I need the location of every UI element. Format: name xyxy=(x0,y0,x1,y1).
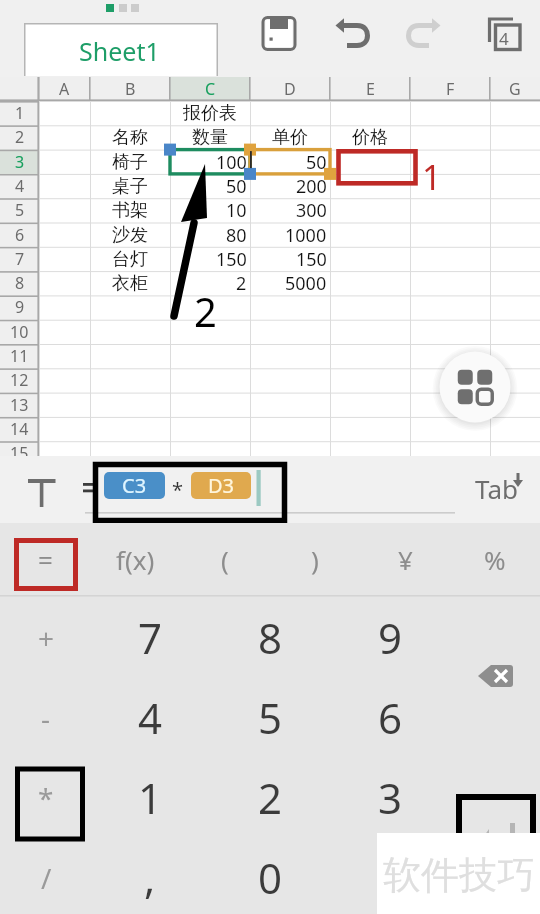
staticText: 150 xyxy=(216,247,247,271)
button[interactable]: D3 xyxy=(191,472,251,499)
staticText: 3 xyxy=(378,769,403,826)
staticText: 12 xyxy=(10,369,29,391)
button[interactable]: 7 xyxy=(100,597,200,677)
button[interactable]: Sheet1 xyxy=(24,23,218,76)
staticText: G xyxy=(509,78,521,100)
staticText: 桌子 xyxy=(112,175,148,198)
staticText: / xyxy=(41,859,52,897)
button[interactable]: F xyxy=(410,77,490,101)
staticText: 150 xyxy=(296,247,327,271)
staticText: - xyxy=(41,699,51,737)
staticText: 11 xyxy=(10,345,29,367)
button[interactable]: 9 xyxy=(340,597,440,677)
button[interactable]: Menu xyxy=(436,349,514,427)
button[interactable]: ¥ xyxy=(360,523,450,595)
button[interactable]: 0 xyxy=(220,837,320,914)
staticText: 4 xyxy=(138,689,163,746)
button[interactable]: Undo xyxy=(330,12,374,56)
staticText: 50 xyxy=(226,174,247,198)
staticText: ( xyxy=(221,542,229,577)
staticText: Sheet1 xyxy=(79,34,160,68)
staticText: 1 xyxy=(15,102,25,124)
staticText: 4 xyxy=(15,175,25,197)
button[interactable]: 2 xyxy=(220,757,320,837)
staticText: 10 xyxy=(10,321,29,343)
staticText: 200 xyxy=(296,174,327,198)
button[interactable]: C3 xyxy=(104,472,165,499)
button[interactable]: / xyxy=(6,838,86,914)
button[interactable]: ) xyxy=(270,523,360,595)
button[interactable]: Redo xyxy=(402,12,446,56)
button[interactable]: f(x) xyxy=(90,523,180,595)
staticText: 2 xyxy=(236,271,247,295)
button[interactable]: Backspace xyxy=(466,653,526,697)
staticText: 7 xyxy=(15,248,25,270)
staticText: 衣柜 xyxy=(112,272,148,295)
staticText: 2 xyxy=(194,284,217,338)
staticText: D xyxy=(284,78,296,100)
staticText: 5000 xyxy=(285,271,327,295)
button[interactable]: % xyxy=(450,523,540,595)
button[interactable]: Tab xyxy=(465,470,527,506)
button[interactable]: = xyxy=(0,523,90,595)
staticText: 8 xyxy=(258,609,283,666)
staticText: F xyxy=(446,78,455,100)
staticText: 名称 xyxy=(112,126,148,149)
staticText: 1 xyxy=(422,154,442,200)
staticText: 5 xyxy=(258,689,283,746)
staticText: 0 xyxy=(258,849,283,906)
staticText: 1000 xyxy=(285,223,327,247)
staticText: B xyxy=(125,78,136,100)
staticText: E xyxy=(366,78,375,100)
staticText: + xyxy=(38,619,55,657)
staticText: 6 xyxy=(15,224,25,246)
staticText: D3 xyxy=(208,472,235,499)
staticText: f(x) xyxy=(116,542,155,577)
staticText: * xyxy=(172,476,184,503)
button[interactable]: D xyxy=(250,77,330,101)
staticText: C3 xyxy=(122,472,147,499)
staticText: 书架 xyxy=(112,199,148,222)
staticText: 4 xyxy=(499,27,509,50)
staticText: 13 xyxy=(10,394,29,416)
staticText: 300 xyxy=(296,198,327,222)
staticText: 5 xyxy=(15,199,25,221)
button[interactable]: C xyxy=(170,77,250,101)
button[interactable]: + xyxy=(6,598,86,678)
staticText: 软件技巧 xyxy=(383,851,535,899)
button[interactable]: 1 xyxy=(100,757,200,837)
button[interactable]: 4 xyxy=(100,677,200,757)
button[interactable]: 3 xyxy=(340,757,440,837)
staticText: 2 xyxy=(258,769,283,826)
button[interactable]: G xyxy=(490,77,540,101)
staticText: 8 xyxy=(15,272,25,294)
staticText: ¥ xyxy=(398,542,413,577)
staticText: 14 xyxy=(10,418,29,440)
button[interactable]: , xyxy=(100,837,200,914)
button[interactable]: E xyxy=(330,77,410,101)
button[interactable]: - xyxy=(6,678,86,758)
button[interactable]: 5 xyxy=(220,677,320,757)
staticText: , xyxy=(144,849,156,906)
staticText: 数量 xyxy=(192,126,228,149)
button[interactable]: * xyxy=(6,758,86,838)
button[interactable]: Enter xyxy=(466,803,526,863)
staticText: 3 xyxy=(15,151,25,173)
staticText: 9 xyxy=(378,609,403,666)
staticText: 沙发 xyxy=(112,224,148,247)
button[interactable]: Save xyxy=(258,12,302,56)
button[interactable]: B xyxy=(90,77,170,101)
staticText: 9 xyxy=(15,296,25,318)
staticText: Tab xyxy=(475,471,518,506)
staticText: 50 xyxy=(306,150,327,174)
button[interactable]: A xyxy=(39,77,90,101)
staticText: 台灯 xyxy=(112,248,148,271)
button[interactable]: Sheets xyxy=(482,12,526,56)
staticText: 6 xyxy=(378,689,403,746)
button[interactable]: 6 xyxy=(340,677,440,757)
button[interactable]: ( xyxy=(180,523,270,595)
staticText: 2 xyxy=(15,126,25,148)
button[interactable]: 8 xyxy=(220,597,320,677)
staticText: 报价表 xyxy=(183,102,237,125)
staticText: 100 xyxy=(216,150,247,174)
